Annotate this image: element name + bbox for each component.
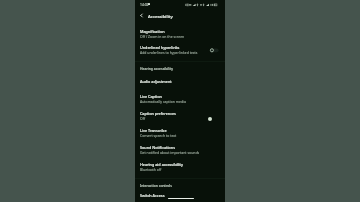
button[interactable]: Live Caption: [135, 91, 225, 108]
button[interactable]: Hearing aid accessibility: [135, 159, 225, 176]
staticText: Live Transcribe: [140, 128, 167, 133]
staticText: 14:02: [140, 2, 149, 6]
button[interactable]: Sound Notifications: [135, 142, 225, 159]
button[interactable]: Live Transcribe: [135, 125, 225, 142]
staticText: Get notified about important sounds: [140, 150, 200, 155]
button[interactable]: Back: [137, 11, 146, 20]
button[interactable]: Switch Access: [135, 190, 225, 201]
staticText: Bluetooth off: [140, 167, 162, 172]
staticText: Off / Zoom in on the screen: [140, 34, 185, 39]
staticText: Accessibility: [148, 13, 173, 19]
staticText: Hearing aid accessibility: [140, 162, 183, 167]
button[interactable]: Magnification: [135, 26, 225, 43]
staticText: Hearing accessibility: [140, 66, 174, 71]
staticText: Audio adjustment: [140, 79, 172, 84]
staticText: Magnification: [140, 29, 165, 34]
button[interactable]: Underlined hyperlinks: [135, 42, 225, 59]
button[interactable]: Audio adjustment: [135, 76, 225, 87]
staticText: Underlined hyperlinks: [140, 45, 180, 50]
staticText: Interaction controls: [140, 183, 172, 188]
staticText: Caption preferences: [140, 111, 176, 116]
button[interactable]: Underlined hyperlinks toggle: [209, 45, 220, 56]
staticText: Automatically caption media: [140, 99, 186, 104]
staticText: Switch Access: [140, 193, 165, 198]
button[interactable]: Caption preferences: [135, 108, 225, 125]
staticText: Live Caption: [140, 94, 162, 99]
staticText: Convert speech to text: [140, 133, 177, 138]
staticText: Off: [140, 116, 146, 121]
staticText: Add underlines to hyperlinked texts: [140, 50, 198, 55]
staticText: Sound Notifications: [140, 145, 175, 150]
